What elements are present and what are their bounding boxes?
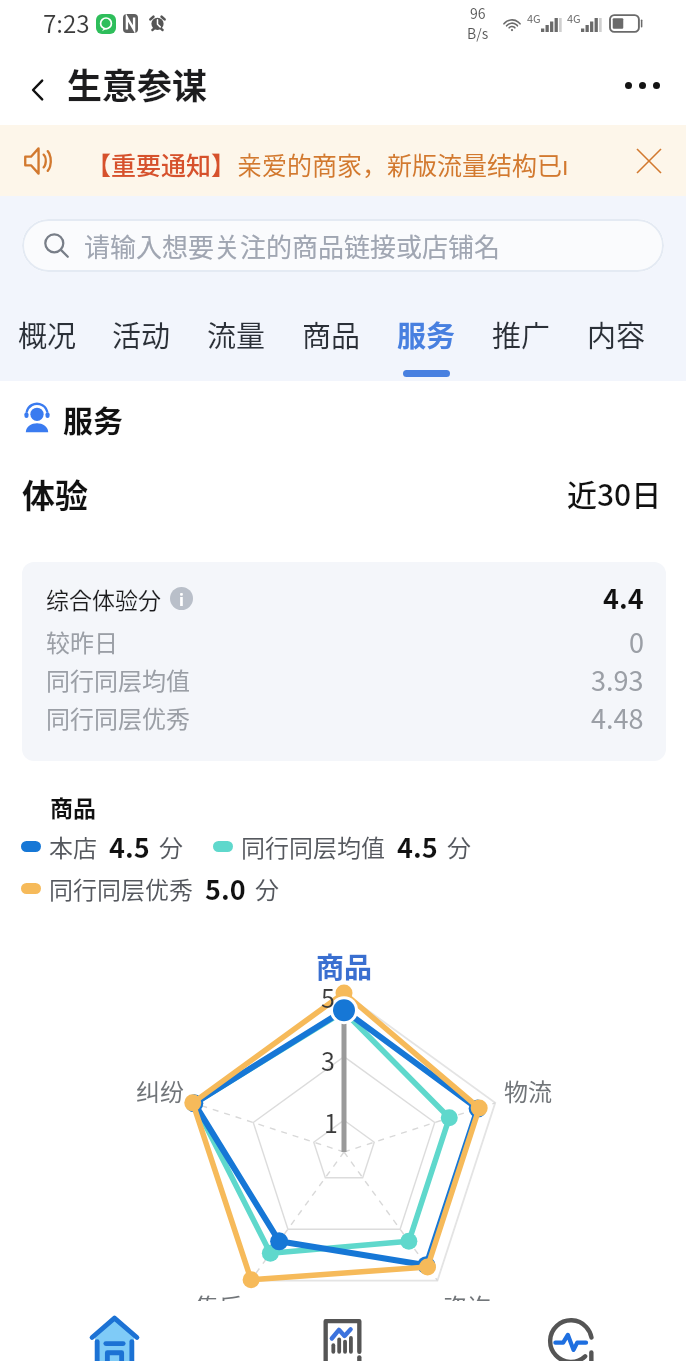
button[interactable]: Analytics bbox=[457, 1301, 686, 1361]
staticText: 分 bbox=[255, 871, 279, 906]
staticText: 5.0 bbox=[205, 869, 246, 908]
staticText: 商品 bbox=[50, 790, 96, 823]
staticText: 0 bbox=[629, 622, 644, 660]
staticText: 推广 bbox=[492, 313, 551, 355]
staticText: 近30日 bbox=[567, 471, 662, 514]
staticText: 纠纷 bbox=[136, 1073, 184, 1108]
staticText: 售后 bbox=[195, 1288, 243, 1323]
staticText: 7:23 bbox=[43, 5, 90, 40]
button[interactable]: 内容 bbox=[569, 292, 664, 381]
staticText: 同行同层优秀 bbox=[46, 700, 190, 735]
button[interactable]: 请输入想要关注的商品链接或店铺名 bbox=[22, 219, 664, 272]
button[interactable]: 商品 bbox=[284, 292, 379, 381]
staticText: 分 bbox=[447, 829, 471, 864]
staticText: 96 bbox=[470, 3, 486, 23]
staticText: 4G bbox=[567, 10, 581, 26]
staticText: 商品 bbox=[316, 946, 373, 987]
staticText: 物流 bbox=[504, 1073, 552, 1108]
staticText: 概况 bbox=[18, 313, 77, 355]
staticText: 内容 bbox=[587, 313, 646, 355]
button[interactable]: Reports bbox=[228, 1301, 457, 1361]
staticText: 本店 bbox=[49, 829, 97, 864]
button[interactable]: 服务 bbox=[379, 292, 474, 381]
button[interactable]: Back bbox=[18, 70, 58, 110]
staticText: 4.5 bbox=[109, 827, 150, 866]
staticText: i bbox=[179, 587, 184, 610]
staticText: 服务 bbox=[397, 313, 456, 355]
staticText: 服务 bbox=[63, 397, 123, 440]
staticText: 分 bbox=[159, 829, 183, 864]
button[interactable]: 推广 bbox=[474, 292, 569, 381]
button[interactable]: 流量 bbox=[189, 292, 284, 381]
button[interactable]: 概况 bbox=[0, 292, 94, 381]
staticText: 体验 bbox=[22, 470, 88, 514]
button[interactable]: More options bbox=[612, 64, 664, 116]
staticText: 亲爱的商家，新版流量结构已ı bbox=[237, 146, 569, 182]
staticText: 4.48 bbox=[591, 698, 644, 736]
staticText: 3 bbox=[321, 1042, 335, 1078]
staticText: 5 bbox=[321, 979, 335, 1015]
staticText: 同行同层均值 bbox=[46, 662, 190, 697]
staticText: 3.93 bbox=[591, 660, 644, 698]
staticText: 综合体验分 bbox=[46, 582, 161, 615]
staticText: 生意参谋 bbox=[67, 58, 208, 109]
button[interactable]: Info bbox=[170, 587, 193, 610]
staticText: 4.4 bbox=[603, 578, 644, 617]
staticText: 1 bbox=[324, 1104, 338, 1140]
button[interactable]: Home bbox=[0, 1301, 228, 1361]
button[interactable]: 活动 bbox=[94, 292, 189, 381]
staticText: B/s bbox=[467, 23, 489, 43]
staticText: 活动 bbox=[112, 313, 171, 355]
staticText: 商品 bbox=[302, 313, 361, 355]
staticText: 4G bbox=[527, 10, 541, 26]
staticText: 请输入想要关注的商品链接或店铺名 bbox=[84, 227, 501, 265]
button[interactable]: Close notice bbox=[626, 138, 672, 184]
staticText: 同行同层优秀 bbox=[49, 871, 193, 906]
staticText: 【重要通知】 bbox=[86, 146, 237, 182]
staticText: 同行同层均值 bbox=[241, 829, 385, 864]
staticText: 流量 bbox=[207, 313, 266, 355]
staticText: 较昨日 bbox=[46, 624, 118, 659]
staticText: 咨询 bbox=[443, 1288, 491, 1323]
staticText: 4.5 bbox=[397, 827, 438, 866]
